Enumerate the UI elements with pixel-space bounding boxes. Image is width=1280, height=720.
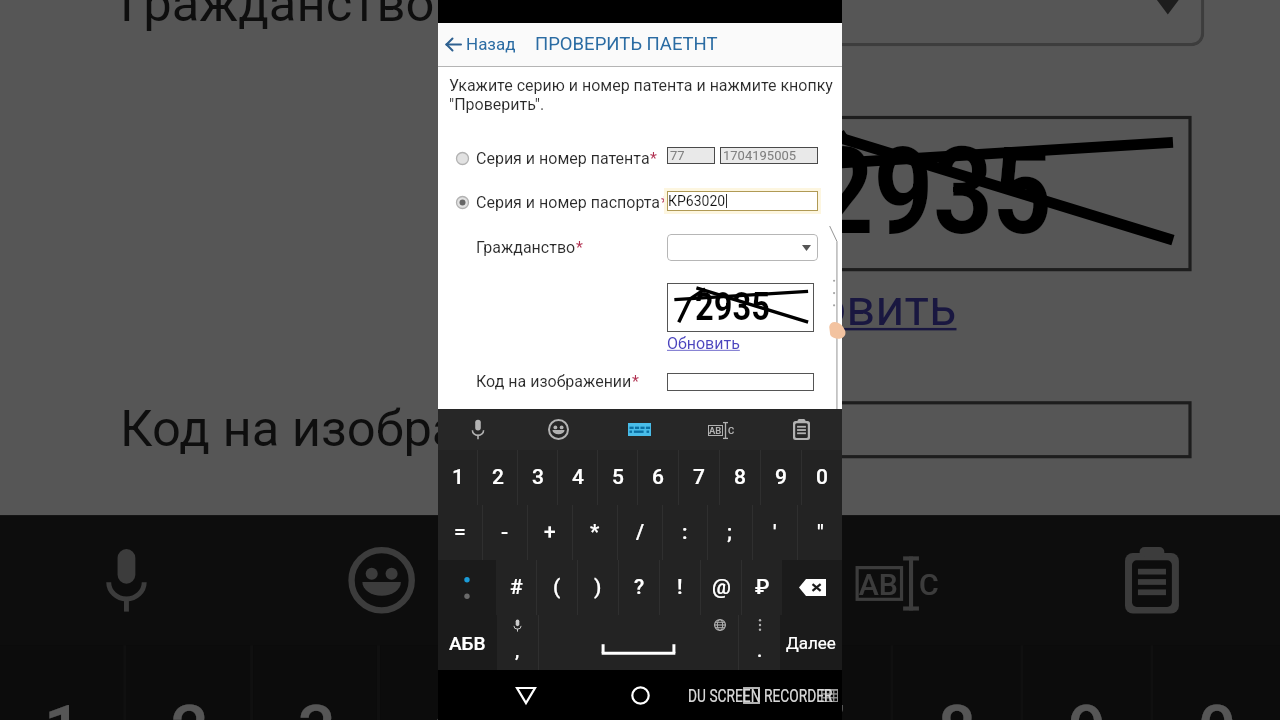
staticText: Укажите серию и номер патента и нажмите … <box>449 76 833 114</box>
button[interactable]: + <box>528 505 572 560</box>
button[interactable]: Обновить <box>667 334 740 353</box>
button[interactable]: Клавиатура <box>599 409 680 450</box>
button[interactable]: 7 <box>679 450 719 505</box>
button[interactable]: Буфер обмена <box>1024 515 1280 645</box>
button[interactable]: ) <box>578 560 618 615</box>
button[interactable]: * <box>573 505 617 560</box>
staticText: 2 <box>492 465 504 490</box>
button[interactable]: Эмодзи <box>518 409 599 450</box>
staticText: = <box>454 520 466 545</box>
staticText: 7 <box>693 465 705 490</box>
button[interactable]: Обновить <box>726 278 957 338</box>
button[interactable]: - <box>483 505 527 560</box>
staticText: * <box>661 193 668 212</box>
button[interactable]: Гражданство <box>726 0 1204 46</box>
button[interactable]: 6 <box>634 645 760 720</box>
staticText: * <box>590 520 600 545</box>
button[interactable]: : <box>663 505 707 560</box>
staticText: Далее <box>786 633 836 653</box>
button[interactable]: 9 <box>1024 645 1150 720</box>
button[interactable]: Главный экран <box>620 670 660 720</box>
staticText: * <box>576 238 583 257</box>
button[interactable]: ₽ <box>742 560 782 615</box>
button[interactable]: ' <box>753 505 797 560</box>
button[interactable]: Голосовой ввод <box>0 515 253 645</box>
staticText: 0 <box>1198 693 1236 720</box>
button[interactable]: Эмодзи <box>253 515 510 645</box>
button[interactable]: . <box>739 615 780 670</box>
button[interactable]: 3 <box>518 450 557 505</box>
button[interactable]: 1 <box>0 645 123 720</box>
button[interactable]: Редактирование текста <box>680 409 761 450</box>
button[interactable]: Не выбрано <box>455 149 657 168</box>
button[interactable]: 9 <box>761 450 801 505</box>
staticText: - <box>501 520 509 545</box>
button[interactable]: Гражданство <box>667 234 818 261</box>
button[interactable]: 5 <box>598 450 637 505</box>
staticText: ПРОВЕРИТЬ ПАЕТНТ <box>535 33 718 55</box>
button[interactable]: 3 <box>253 645 377 720</box>
button[interactable]: 7 <box>764 645 890 720</box>
button[interactable]: 4 <box>558 450 597 505</box>
button[interactable]: = <box>438 505 482 560</box>
button[interactable]: 1 <box>438 450 477 505</box>
staticText: ( <box>553 575 561 600</box>
staticText: 7 <box>808 693 846 720</box>
button[interactable]: 2 <box>478 450 517 505</box>
button[interactable]: 8 <box>720 450 760 505</box>
button[interactable]: / <box>618 505 662 560</box>
staticText: . <box>757 639 763 661</box>
button[interactable]: ! <box>660 560 700 615</box>
button[interactable]: Голосовой ввод <box>438 409 518 450</box>
button[interactable]: , <box>497 615 538 670</box>
staticText: C <box>919 566 941 601</box>
button[interactable]: Удалить <box>782 560 842 615</box>
staticText: , <box>515 639 520 661</box>
button[interactable]: 5 <box>507 645 630 720</box>
staticText: + <box>544 520 556 545</box>
button[interactable]: Ещё символы <box>438 560 496 615</box>
button[interactable]: Выбрано <box>455 195 470 210</box>
button[interactable]: Назад <box>506 670 546 720</box>
button[interactable]: ? <box>619 560 659 615</box>
button[interactable]: Клавиатура <box>510 515 767 645</box>
button[interactable]: 0 <box>1153 645 1280 720</box>
staticText: КР63020 <box>668 193 726 209</box>
staticText: 6 <box>678 693 716 720</box>
staticText: ? <box>634 575 645 600</box>
button[interactable]: " <box>798 505 842 560</box>
staticText: # <box>510 575 523 600</box>
staticText: 9 <box>775 465 787 490</box>
staticText: AB <box>709 425 722 436</box>
staticText: 5 <box>612 465 624 490</box>
staticText: * <box>632 372 639 391</box>
staticText: Серия и номер паспорта <box>476 193 661 212</box>
button[interactable]: 2 <box>126 645 250 720</box>
button[interactable]: АБВ <box>438 615 497 670</box>
button[interactable]: Буфер обмена <box>761 409 842 450</box>
staticText: Гражданство <box>120 0 437 33</box>
staticText: C <box>728 425 735 436</box>
button[interactable]: # <box>496 560 536 615</box>
button[interactable]: 6 <box>638 450 678 505</box>
staticText: Код на изображении <box>476 372 632 391</box>
button[interactable]: 8 <box>894 645 1020 720</box>
button[interactable]: 0 <box>802 450 842 505</box>
button[interactable]: ; <box>708 505 752 560</box>
button[interactable]: Назад <box>438 30 522 60</box>
button[interactable]: @ <box>701 560 741 615</box>
button[interactable]: Пробел <box>539 615 738 670</box>
button[interactable]: Недавние приложения <box>680 670 842 720</box>
button[interactable]: Далее <box>780 615 842 670</box>
staticText: @ <box>712 575 731 600</box>
button[interactable]: Выбрано <box>455 193 668 212</box>
button[interactable]: Открыть панель <box>820 67 842 409</box>
staticText: Серия и номер патента <box>476 149 650 168</box>
button[interactable]: Редактирование текста <box>767 515 1024 645</box>
staticText: 2935 <box>814 122 1054 265</box>
button[interactable]: Не выбрано <box>455 151 470 166</box>
button[interactable]: 4 <box>380 645 504 720</box>
button[interactable]: ( <box>537 560 577 615</box>
staticText: АБВ <box>449 632 486 654</box>
